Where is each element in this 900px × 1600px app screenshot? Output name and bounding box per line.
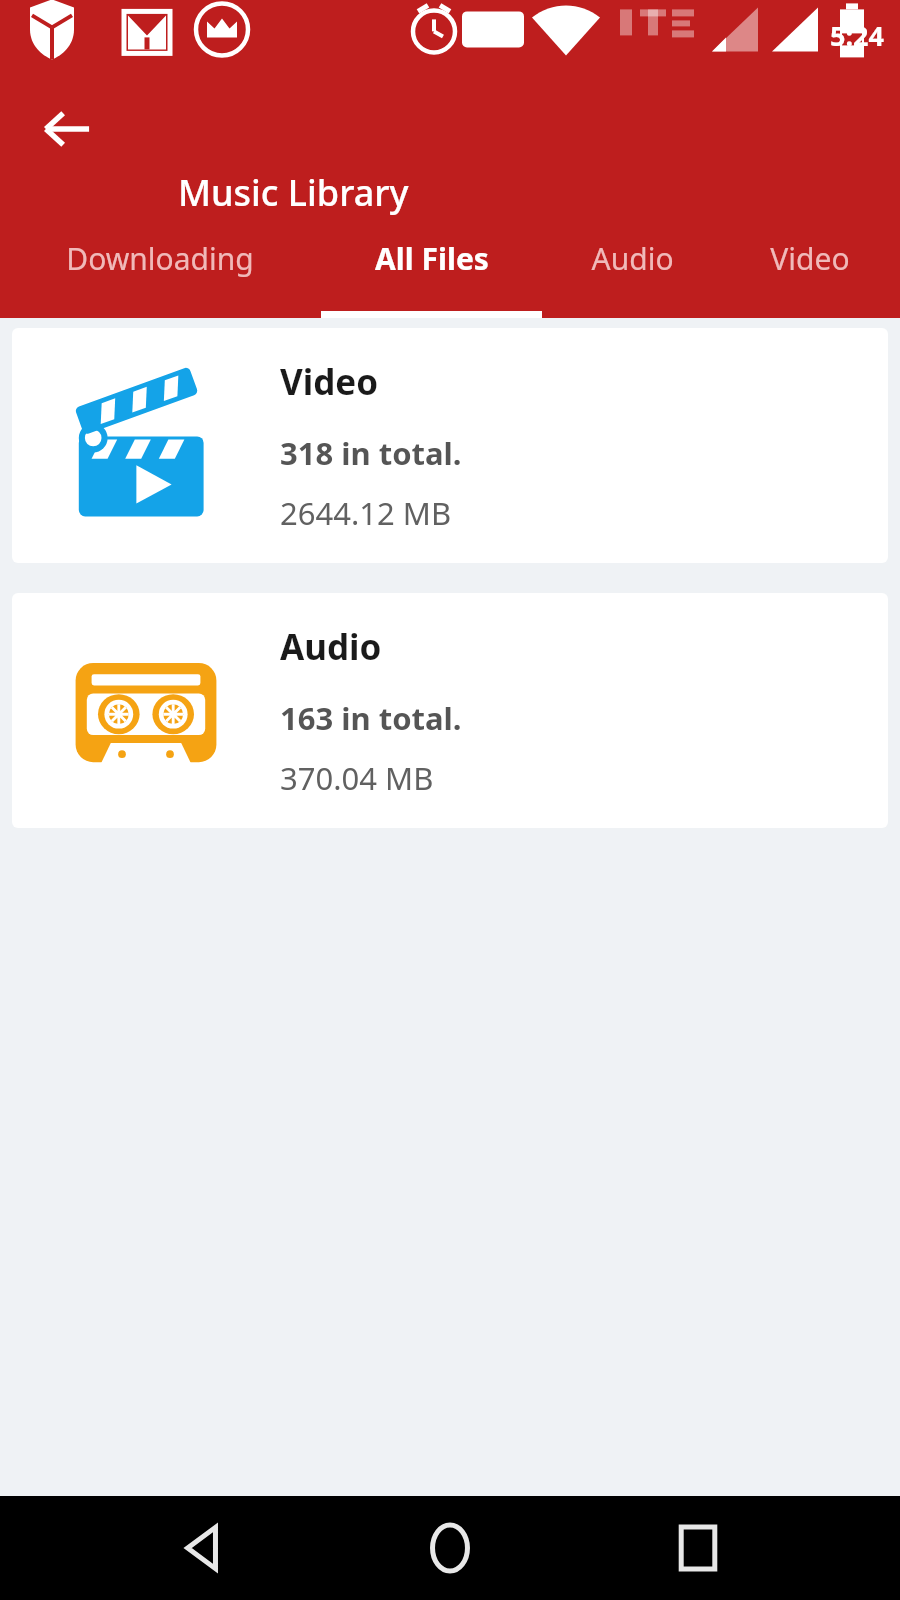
staticText: Audio [591, 238, 674, 279]
staticText: 5:24 [830, 17, 884, 54]
button[interactable]: Back [28, 90, 106, 168]
button[interactable]: Video [12, 328, 888, 563]
staticText: Audio [280, 623, 382, 671]
staticText: All Files [375, 238, 489, 279]
button[interactable]: Recent apps [653, 1503, 743, 1593]
staticText: Downloading [66, 238, 254, 279]
staticText: Video [280, 358, 379, 406]
staticText: 318 in total. [280, 432, 462, 474]
button[interactable]: Audio [544, 222, 720, 318]
button[interactable]: Downloading [0, 222, 319, 318]
button[interactable]: Back [158, 1503, 248, 1593]
staticText: Video [770, 238, 850, 279]
button[interactable]: Video [720, 222, 900, 318]
button[interactable]: Home [405, 1503, 495, 1593]
button[interactable]: Audio [12, 593, 888, 828]
staticText: 163 in total. [280, 697, 462, 739]
button[interactable]: All Files [319, 222, 544, 318]
staticText: Music Library [178, 168, 409, 217]
staticText: 370.04 MB [280, 757, 434, 799]
staticText: 2644.12 MB [280, 492, 452, 534]
